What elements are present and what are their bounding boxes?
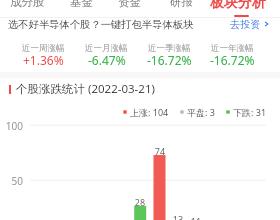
staticText: 100: [0, 119, 23, 133]
staticText: 基金: [70, 0, 93, 9]
staticText: 下跌: 31: [233, 106, 267, 118]
staticText: 成分股: [10, 0, 45, 9]
button[interactable]: 资金: [112, 0, 147, 9]
staticText: -6.47%: [88, 52, 126, 68]
staticText: -16.72%: [210, 52, 255, 68]
staticText: 近一周涨幅: [22, 43, 65, 54]
staticText: 个股涨跌统计 (2022-03-21): [16, 81, 155, 97]
staticText: 平盘: 3: [187, 106, 215, 118]
staticText: 11: [184, 215, 208, 220]
staticText: 研报: [170, 0, 193, 9]
staticText: 上涨: 104: [130, 106, 169, 118]
button[interactable]: 研报: [164, 0, 199, 9]
staticText: 近一年涨幅: [211, 43, 254, 54]
button[interactable]: 板块分析: [205, 0, 261, 18]
staticText: 去投资: [230, 18, 261, 31]
staticText: -16.72%: [147, 52, 192, 68]
button[interactable]: 成分股: [4, 0, 51, 9]
button[interactable]: 选不好半导体个股？一键打包半导体板块: [0, 16, 280, 32]
staticText: 板块分析: [210, 0, 266, 12]
staticText: +1.36%: [23, 52, 64, 68]
staticText: 50: [0, 174, 23, 188]
staticText: 28: [128, 196, 152, 208]
staticText: 选不好半导体个股？一键打包半导体板块: [8, 18, 194, 31]
staticText: 74: [148, 145, 172, 157]
staticText: 资金: [118, 0, 141, 9]
staticText: 近一月涨幅: [85, 43, 128, 54]
button[interactable]: 基金: [64, 0, 99, 9]
staticText: 近一季涨幅: [148, 43, 191, 54]
staticText: 13: [166, 213, 190, 220]
